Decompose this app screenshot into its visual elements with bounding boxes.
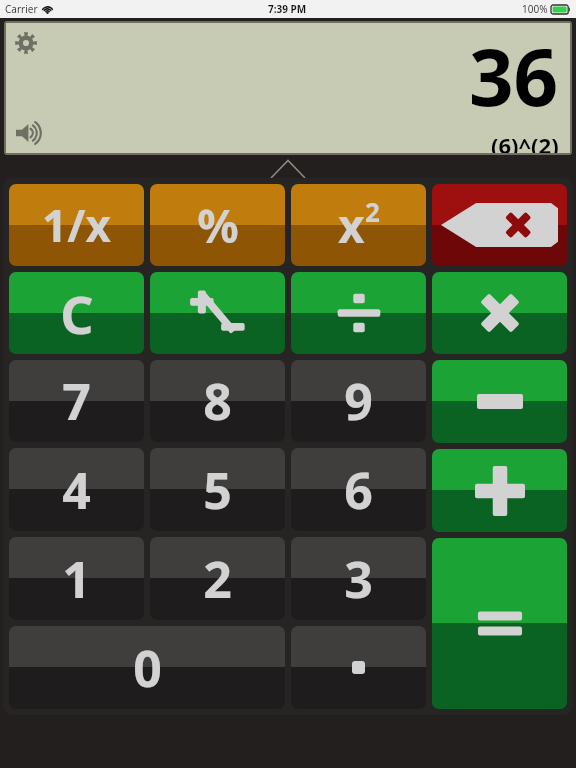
button[interactable]: 0 — [9, 626, 285, 709]
button[interactable]: Divide — [291, 272, 426, 354]
staticText: 36 — [469, 23, 559, 129]
button[interactable]: 7 — [9, 360, 144, 442]
button[interactable]: Backspace — [432, 184, 567, 266]
button[interactable]: 6 — [291, 448, 426, 531]
other: Sound — [16, 123, 44, 143]
button[interactable]: % — [150, 184, 285, 266]
button[interactable]: 3 — [291, 537, 426, 620]
staticText: 4 — [62, 456, 91, 524]
staticText: (6)^(2) — [491, 130, 559, 153]
other: Settings — [15, 32, 37, 54]
staticText: 2 — [365, 194, 380, 229]
staticText: 1 — [62, 545, 91, 613]
staticText: 7 — [62, 367, 91, 435]
staticText: x — [338, 194, 365, 257]
button[interactable]: 8 — [150, 360, 285, 442]
staticText: C — [60, 278, 94, 349]
staticText: 1/x — [42, 195, 111, 255]
button[interactable]: Plus minus — [150, 272, 285, 354]
staticText: 8 — [203, 367, 232, 435]
button[interactable]: Minus — [432, 360, 567, 443]
button[interactable]: Settings — [6, 23, 570, 153]
button[interactable]: 2 — [150, 537, 285, 620]
button[interactable]: x squared — [291, 184, 426, 266]
staticText: 0 — [133, 634, 162, 702]
button[interactable]: Equals — [432, 538, 567, 709]
button[interactable]: 1/x — [9, 184, 144, 266]
staticText: % — [197, 194, 239, 257]
button[interactable]: Decimal point — [291, 626, 426, 709]
staticText: 7:39 PM — [268, 2, 307, 16]
staticText: 2 — [203, 545, 232, 613]
button[interactable]: Plus — [432, 449, 567, 532]
staticText: Carrier — [5, 2, 38, 16]
staticText: 3 — [344, 545, 373, 613]
staticText: 6 — [344, 456, 373, 524]
staticText: 9 — [344, 367, 373, 435]
button[interactable]: 4 — [9, 448, 144, 531]
button[interactable]: C — [9, 272, 144, 354]
staticText: 5 — [203, 456, 232, 524]
staticText: 100% — [522, 2, 548, 16]
button[interactable]: 1 — [9, 537, 144, 620]
button[interactable]: 9 — [291, 360, 426, 442]
button[interactable]: 5 — [150, 448, 285, 531]
button[interactable]: Multiply — [432, 272, 567, 354]
